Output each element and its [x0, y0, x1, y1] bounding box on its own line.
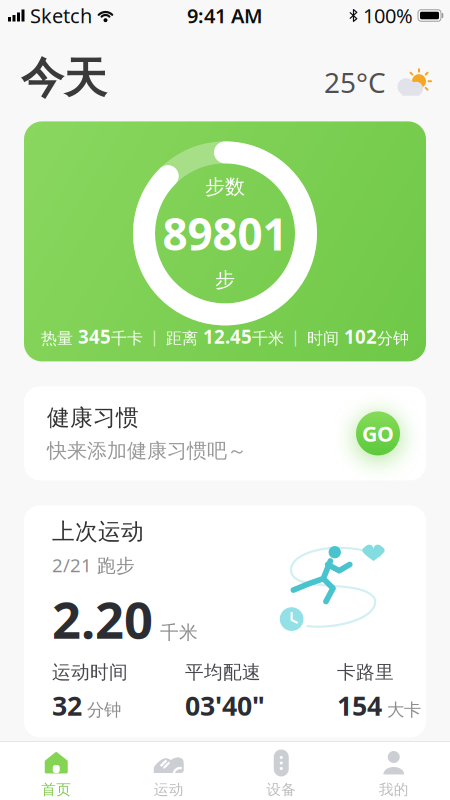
staticText: 首页	[41, 780, 71, 798]
staticText: 快来添加健康习惯吧～	[47, 438, 247, 463]
staticText: 设备	[266, 780, 296, 798]
staticText: 03'40"	[185, 688, 265, 723]
staticText: Sketch	[30, 2, 92, 29]
staticText: 大卡	[382, 699, 421, 721]
staticText: 2/21 跑步	[52, 553, 135, 577]
staticText: 距离 12.45千米	[166, 324, 284, 349]
staticText: 运动时间	[52, 661, 128, 684]
staticText: 运动	[154, 780, 184, 798]
staticText: 热量 345千卡	[41, 324, 143, 349]
staticText: 上次运动	[52, 518, 144, 546]
staticText: 25°C	[324, 64, 386, 101]
staticText: 分钟	[82, 699, 121, 721]
staticText: 卡路里	[337, 661, 394, 684]
button[interactable]: 健康习惯	[24, 386, 426, 480]
staticText: 千米	[160, 621, 198, 644]
button[interactable]: 上次运动	[24, 505, 426, 737]
staticText: 时间 102分钟	[307, 324, 409, 349]
button[interactable]: 首页	[0, 749, 112, 799]
button[interactable]: 运动	[112, 749, 225, 799]
staticText: 今天	[21, 52, 107, 104]
button[interactable]: 我的	[337, 749, 450, 799]
staticText: 平均配速	[185, 661, 261, 684]
staticText: 步	[215, 268, 235, 292]
staticText: 步数	[205, 175, 245, 199]
staticText: 2.20	[52, 585, 153, 653]
staticText: 32	[52, 688, 82, 723]
button[interactable]: 设备	[225, 749, 337, 799]
staticText: 我的	[379, 780, 409, 798]
staticText: 9:41 AM	[187, 2, 263, 29]
staticText: 89801	[162, 204, 287, 263]
staticText: |	[291, 326, 300, 347]
staticText: 154	[337, 688, 382, 723]
staticText: |	[150, 326, 159, 347]
staticText: GO	[362, 419, 394, 447]
staticText: 健康习惯	[47, 404, 139, 431]
staticText: 100%	[363, 2, 413, 29]
